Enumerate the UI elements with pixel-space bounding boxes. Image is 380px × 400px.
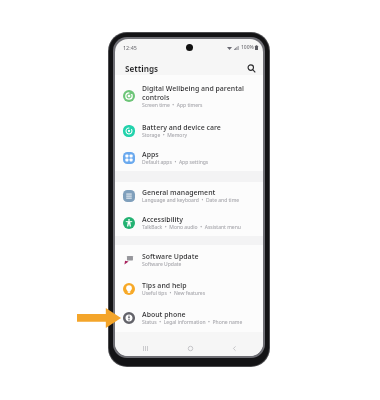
staticText: Settings: [125, 63, 159, 74]
button[interactable]: Tips and help: [115, 274, 263, 303]
staticText: Software Update: [142, 261, 182, 268]
staticText: Digital Wellbeing and parental: [142, 84, 244, 93]
button[interactable]: Home: [184, 342, 197, 355]
button[interactable]: About phone: [115, 303, 263, 332]
staticText: TalkBack • Mono audio • Assistant menu: [142, 224, 241, 231]
staticText: General management: [142, 188, 216, 197]
staticText: 12:45: [123, 44, 137, 51]
staticText: Status • Legal information • Phone name: [142, 319, 243, 326]
button[interactable]: Back: [228, 342, 241, 355]
staticText: Apps: [142, 150, 159, 159]
staticText: About phone: [142, 310, 186, 319]
button[interactable]: Search: [245, 62, 258, 75]
staticText: Battery and device care: [142, 123, 221, 132]
button[interactable]: Recent apps: [139, 342, 152, 355]
staticText: Default apps • App settings: [142, 159, 209, 166]
staticText: Screen time • App timers: [142, 102, 203, 109]
staticText: Useful tips • New features: [142, 290, 206, 297]
staticText: controls: [142, 93, 170, 102]
staticText: Accessibility: [142, 215, 184, 224]
button[interactable]: Apps: [115, 144, 263, 171]
staticText: 100%: [241, 44, 254, 51]
staticText: Tips and help: [142, 281, 187, 290]
staticText: Storage • Memory: [142, 132, 187, 139]
button[interactable]: Battery and device care: [115, 117, 263, 144]
button[interactable]: Digital Wellbeing and parental: [115, 75, 263, 117]
button[interactable]: Accessibility: [115, 209, 263, 236]
button[interactable]: Software Update: [115, 245, 263, 274]
staticText: Software Update: [142, 252, 199, 261]
staticText: Language and keyboard • Date and time: [142, 197, 240, 204]
button[interactable]: General management: [115, 182, 263, 209]
